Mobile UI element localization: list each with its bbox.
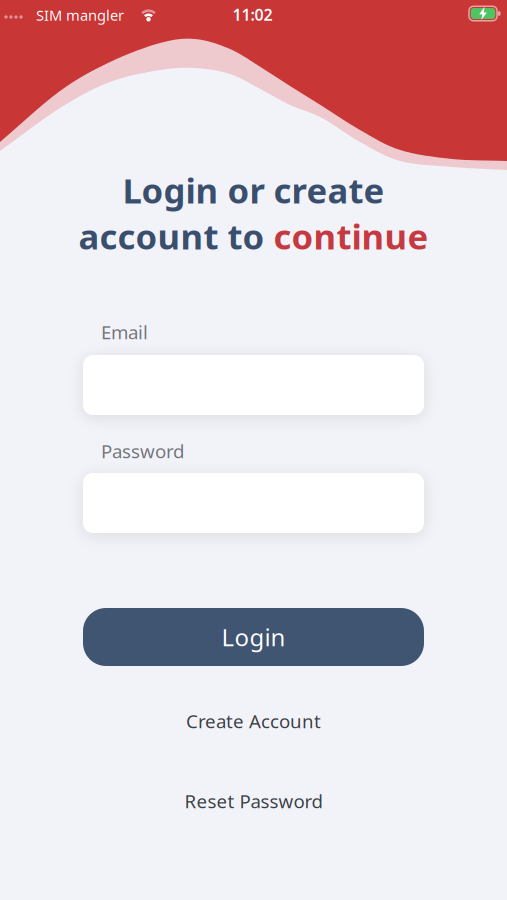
- button[interactable]: Create Account: [186, 709, 321, 733]
- staticText: SIM mangler: [36, 5, 124, 25]
- staticText: account to: [78, 213, 273, 259]
- staticText: 11:02: [232, 4, 272, 25]
- staticText: Login: [221, 621, 285, 653]
- staticText: continue: [273, 213, 428, 259]
- button[interactable]: Login: [83, 608, 424, 666]
- staticText: Create Account: [186, 709, 321, 733]
- staticText: Login or create: [122, 167, 384, 213]
- staticText: Email: [101, 320, 148, 344]
- staticText: Password: [101, 439, 184, 463]
- button[interactable]: Reset Password: [184, 789, 322, 813]
- staticText: Reset Password: [184, 789, 322, 813]
